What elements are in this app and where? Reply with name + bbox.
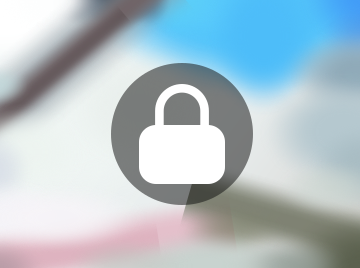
button[interactable]: Locked xyxy=(111,63,253,205)
